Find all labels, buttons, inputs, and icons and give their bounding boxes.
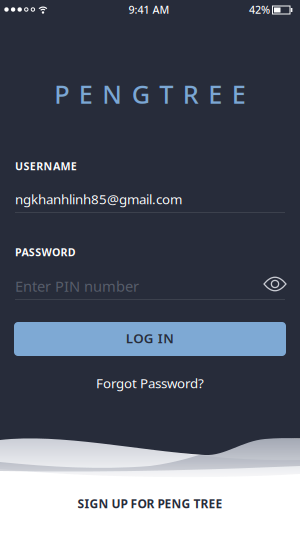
- button[interactable]: Forgot Password?: [96, 374, 204, 392]
- staticText: LOG IN: [126, 329, 174, 347]
- staticText: PENGTREE: [54, 77, 246, 111]
- staticText: Enter PIN number: [15, 276, 139, 296]
- button[interactable]: ngkhanhlinh85@gmail.com: [15, 192, 285, 213]
- staticText: 42%: [249, 2, 270, 17]
- button[interactable]: Enter PIN number: [15, 279, 285, 300]
- staticText: 9:41 AM: [128, 2, 169, 17]
- button[interactable]: LOG IN: [14, 322, 286, 356]
- staticText: SIGN UP FOR PENG TREE: [77, 495, 222, 511]
- staticText: Forgot Password?: [96, 374, 204, 392]
- button[interactable]: [262, 274, 288, 294]
- staticText: USERNAME: [15, 159, 77, 173]
- button[interactable]: SIGN UP FOR PENG TREE: [35, 496, 265, 510]
- staticText: PASSWORD: [15, 245, 76, 259]
- staticText: ngkhanhlinh85@gmail.com: [15, 190, 182, 208]
